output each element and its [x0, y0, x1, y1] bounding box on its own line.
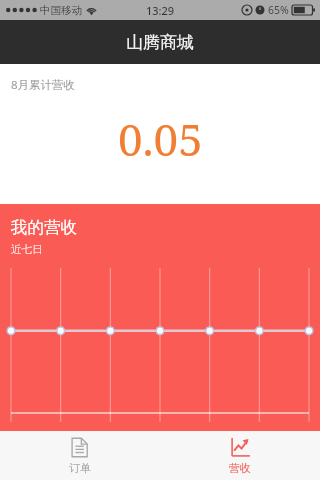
staticText: 营收: [229, 461, 251, 475]
staticText: 0.05: [118, 109, 203, 169]
button[interactable]: 我的营收: [0, 204, 320, 431]
staticText: 8月累计营收: [11, 77, 76, 93]
staticText: 中国移动: [40, 4, 82, 17]
staticText: 65%: [268, 3, 289, 17]
staticText: 近七日: [11, 243, 43, 256]
staticText: 山腾商城: [126, 32, 194, 53]
staticText: 13:29: [146, 3, 175, 18]
button[interactable]: 订单: [0, 431, 160, 480]
other: 订单: [70, 437, 91, 458]
other: 营收: [230, 437, 251, 458]
staticText: 订单: [69, 461, 91, 475]
button[interactable]: 营收: [160, 431, 320, 480]
staticText: 我的营收: [11, 217, 77, 238]
